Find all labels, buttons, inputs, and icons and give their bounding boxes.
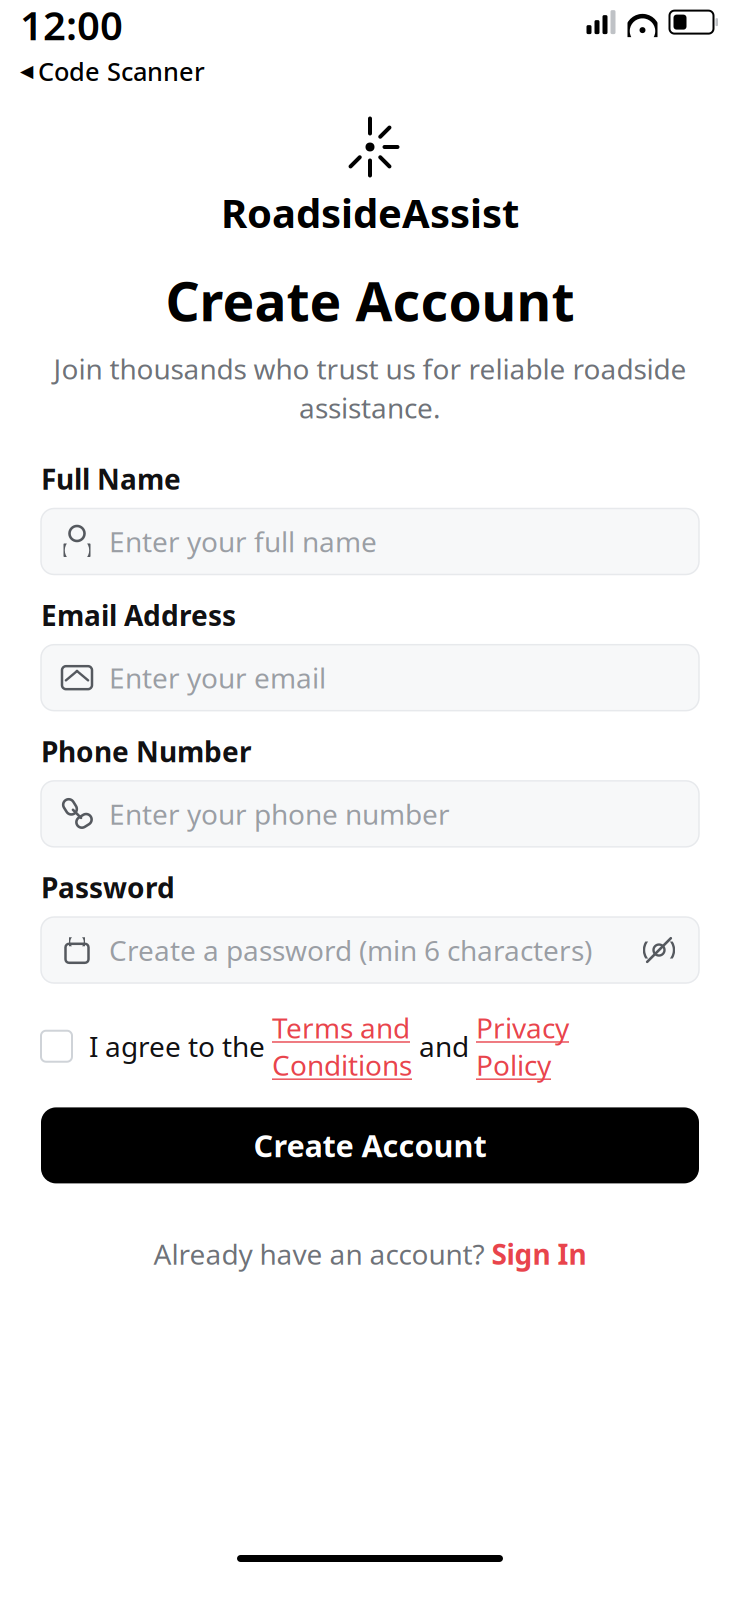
staticText: Sign In [491, 1235, 586, 1273]
staticText: Join thousands who trust us for reliable… [53, 350, 686, 387]
button[interactable]: Enter your full name [41, 508, 699, 574]
staticText: Create Account [253, 1125, 486, 1166]
staticText: Phone Number [41, 733, 252, 770]
staticText: Email Address [41, 596, 236, 634]
staticText: Enter your email [109, 659, 326, 696]
staticText: Privacy Policy [476, 1009, 569, 1083]
button[interactable]: Agree to terms [41, 1031, 72, 1062]
staticText: ◀ [20, 61, 33, 81]
staticText: Already have an account? [153, 1235, 491, 1273]
staticText: Create Account [165, 265, 574, 336]
staticText: assistance. [299, 389, 441, 426]
staticText: I agree to the [89, 1028, 272, 1065]
button[interactable]: Already have an account? [153, 1235, 586, 1273]
button[interactable]: Create a password (min 6 characters) [41, 917, 699, 983]
staticText: RoadsideAssist [221, 186, 519, 239]
button[interactable]: Create Account [41, 1107, 699, 1183]
staticText: Full Name [41, 460, 181, 497]
button[interactable]: Enter your phone number [41, 781, 699, 847]
staticText: Create a password (min 6 characters) [109, 931, 592, 969]
staticText: and [412, 1028, 476, 1065]
staticText: Enter your full name [109, 523, 377, 560]
staticText: Enter your phone number [109, 795, 450, 832]
staticText: Code Scanner [38, 54, 205, 88]
button[interactable]: Terms and Conditions [272, 1009, 412, 1083]
staticText: Terms and Conditions [272, 1009, 412, 1083]
button[interactable]: Enter your email [41, 645, 699, 711]
staticText: 12:00 [20, 0, 123, 51]
button[interactable]: Privacy Policy [476, 1009, 569, 1083]
staticText: Password [41, 869, 175, 906]
